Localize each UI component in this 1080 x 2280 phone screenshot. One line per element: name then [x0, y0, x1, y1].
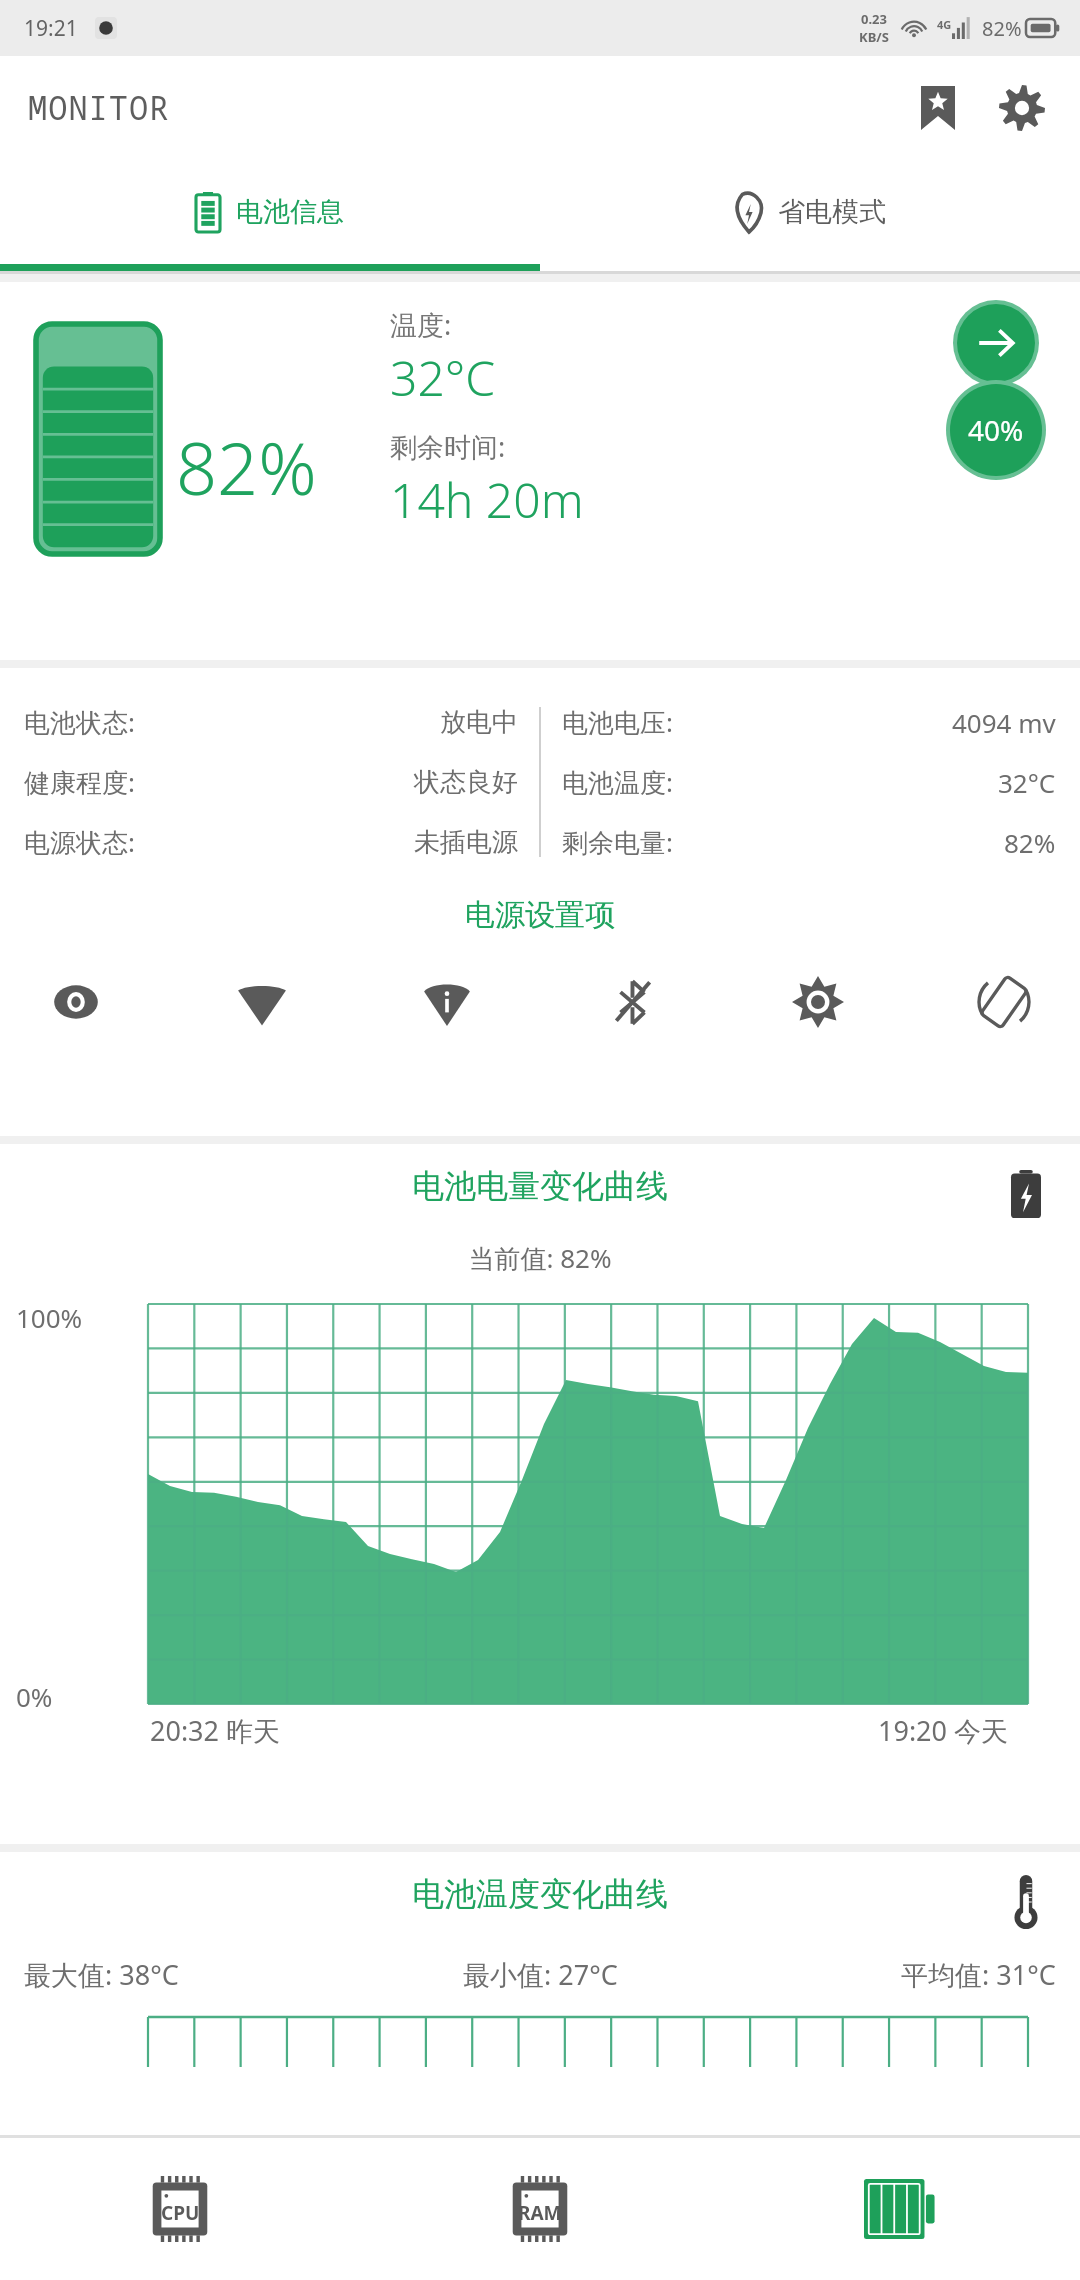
staticText: 20:32 昨天: [150, 1712, 281, 1749]
button[interactable]: RAM: [360, 2138, 720, 2280]
staticText: 当前值: 82%: [0, 1240, 1080, 1276]
staticText: 82%: [1004, 825, 1056, 860]
staticText: 最小值: 27°C: [463, 1956, 618, 1993]
button[interactable]: Bluetooth: [591, 960, 675, 1044]
staticText: 电池信息: [236, 195, 344, 229]
staticText: 最大值: 38°C: [24, 1956, 179, 1993]
staticText: CPU: [161, 2200, 200, 2226]
button[interactable]: 省电模式: [540, 160, 1080, 264]
staticText: 电源设置项: [0, 896, 1080, 934]
staticText: 剩余时间:: [390, 428, 506, 465]
button[interactable]: Bookmark: [908, 78, 968, 138]
staticText: 19:21: [24, 14, 78, 43]
button[interactable]: 电池信息: [0, 160, 540, 264]
staticText: 电池电压:: [562, 704, 673, 740]
button[interactable]: Wi-Fi: [220, 960, 304, 1044]
staticText: 82%: [982, 15, 1022, 42]
staticText: 电池温度变化曲线: [0, 1874, 1080, 1914]
staticText: RAM: [518, 2200, 562, 2226]
staticText: 放电中: [440, 706, 518, 739]
staticText: 82%: [176, 418, 317, 516]
staticText: 未插电源: [414, 826, 518, 859]
staticText: 平均值: 31°C: [901, 1956, 1056, 1993]
button[interactable]: More: [957, 304, 1035, 382]
staticText: 电源状态:: [24, 824, 135, 860]
button[interactable]: Battery: [720, 2138, 1080, 2280]
staticText: 40%: [968, 411, 1024, 449]
staticText: 0%: [16, 1679, 53, 1714]
staticText: 4G: [937, 17, 952, 32]
staticText: 19:20 今天: [878, 1712, 1009, 1749]
staticText: 0.23: [861, 10, 887, 28]
staticText: 温度:: [390, 306, 452, 343]
staticText: 14h 20m: [390, 467, 584, 532]
staticText: 剩余电量:: [562, 824, 673, 860]
staticText: 健康程度:: [24, 764, 135, 800]
button[interactable]: 40%: [950, 384, 1042, 476]
staticText: 状态良好: [414, 766, 518, 799]
staticText: 电池温度:: [562, 764, 673, 800]
staticText: KB/S: [859, 28, 889, 46]
button[interactable]: Settings: [990, 76, 1054, 140]
staticText: 电池电量变化曲线: [0, 1166, 1080, 1206]
staticText: MONITOR: [28, 86, 170, 130]
staticText: 4094 mv: [952, 705, 1056, 740]
button[interactable]: Location: [405, 960, 489, 1044]
button[interactable]: Display timeout: [34, 960, 118, 1044]
staticText: 32°C: [998, 765, 1056, 800]
button[interactable]: CPU: [0, 2138, 360, 2280]
button[interactable]: Auto rotate: [962, 960, 1046, 1044]
button[interactable]: Brightness: [776, 960, 860, 1044]
button[interactable]: Battery: [998, 1166, 1054, 1222]
staticText: 省电模式: [778, 195, 886, 229]
staticText: 32°C: [390, 345, 496, 410]
button[interactable]: Temperature: [998, 1874, 1054, 1930]
staticText: 电池状态:: [24, 704, 135, 740]
staticText: 100%: [16, 1300, 83, 1335]
